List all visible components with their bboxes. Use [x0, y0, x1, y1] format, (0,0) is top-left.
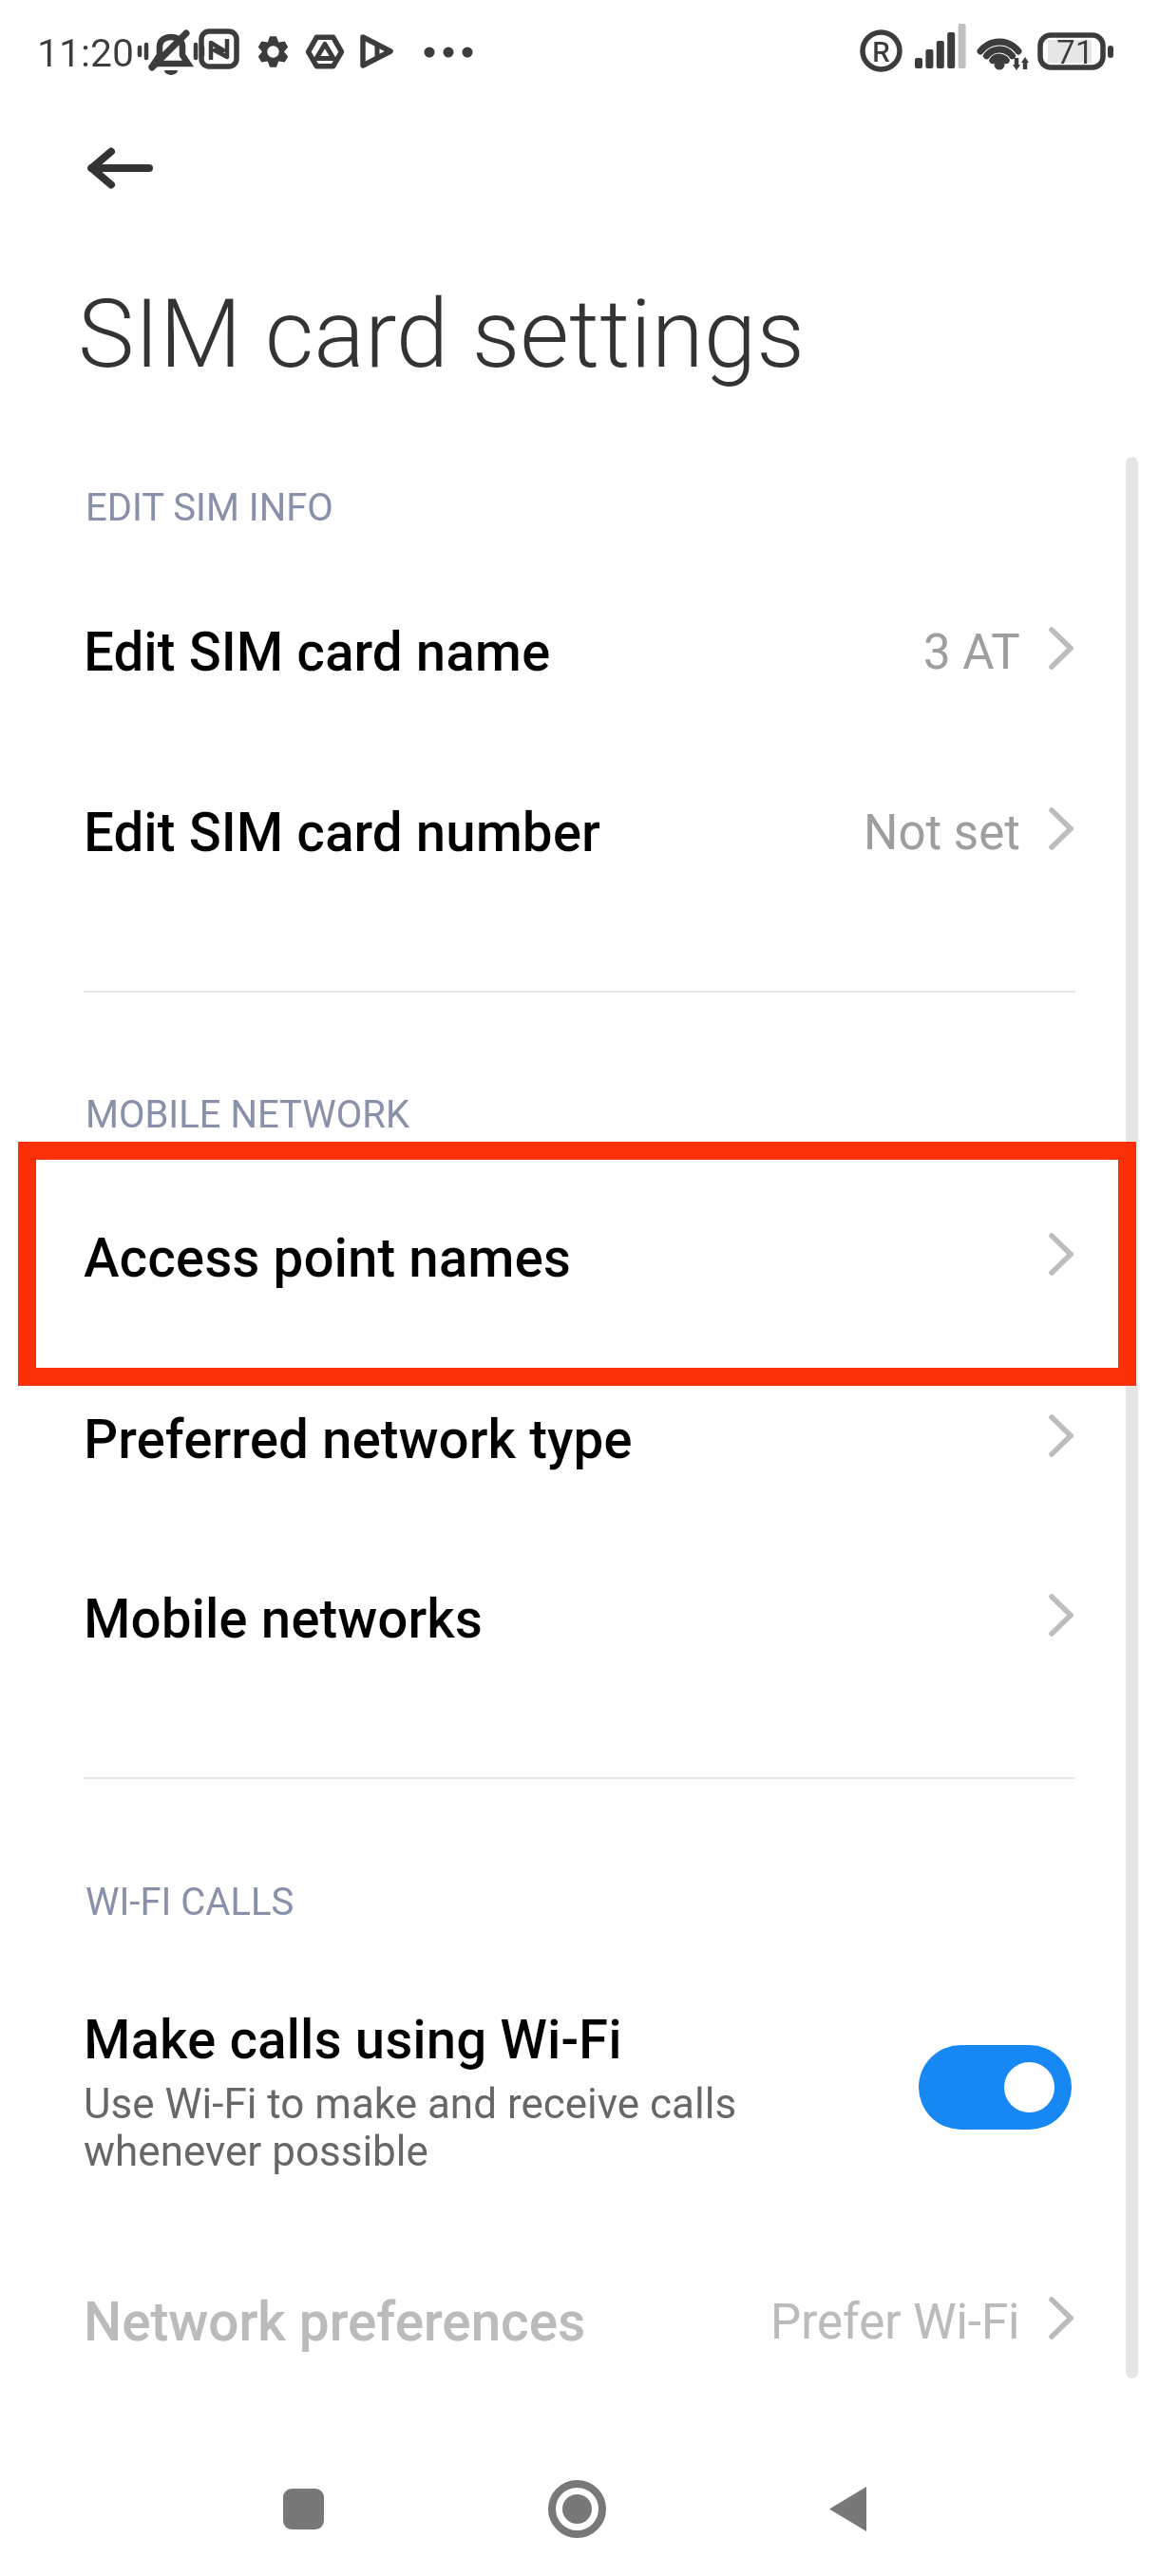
button[interactable]: Recent apps	[246, 2452, 360, 2566]
staticText: 71	[1056, 33, 1094, 72]
button[interactable]: Home	[520, 2452, 634, 2566]
button[interactable]: Mobile networks	[0, 1548, 1159, 1691]
staticText: WI-FI CALLS	[85, 1880, 294, 1924]
staticText: Use Wi-Fi to make and receive calls when…	[84, 2079, 939, 2176]
staticText: Prefer Wi-Fi	[770, 2294, 1020, 2351]
button[interactable]: Edit SIM card number	[0, 762, 1159, 904]
button[interactable]: Make calls using Wi-Fi	[0, 1976, 1159, 2261]
staticText: EDIT SIM INFO	[85, 485, 333, 530]
staticText: Make calls using Wi-Fi	[84, 2009, 622, 2072]
button[interactable]: Network preferences	[0, 2251, 1159, 2394]
staticText: Not set	[864, 805, 1020, 862]
staticText: Mobile networks	[84, 1588, 483, 1651]
button[interactable]: Back	[57, 124, 180, 212]
staticText: Preferred network type	[84, 1409, 633, 1471]
staticText: Access point names	[84, 1227, 572, 1290]
staticText: 3 AT	[923, 624, 1020, 681]
button[interactable]: Access point names	[0, 1187, 1159, 1330]
staticText: Edit SIM card number	[84, 802, 600, 864]
button[interactable]: Edit SIM card name	[0, 581, 1159, 724]
button[interactable]: Make calls using Wi-Fi	[919, 2045, 1072, 2130]
staticText: R	[872, 35, 890, 68]
staticText: Edit SIM card name	[84, 621, 551, 684]
staticText: 11:20	[37, 30, 135, 76]
staticText: SIM card settings	[78, 278, 806, 389]
staticText: MOBILE NETWORK	[85, 1092, 410, 1137]
button[interactable]: Back	[790, 2452, 904, 2566]
staticText: Network preferences	[84, 2291, 586, 2354]
button[interactable]: Preferred network type	[0, 1369, 1159, 1511]
